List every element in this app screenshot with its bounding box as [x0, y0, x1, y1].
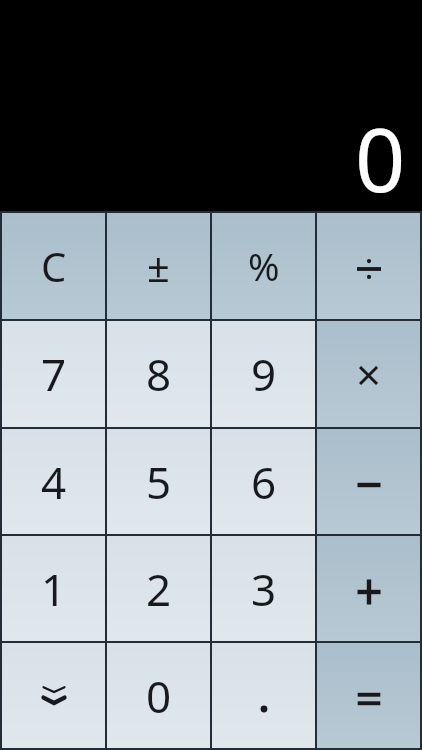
button[interactable]: C	[2, 213, 105, 319]
staticText: 8	[146, 344, 172, 404]
staticText: 9	[251, 344, 277, 404]
staticText: 0	[355, 98, 406, 218]
button[interactable]: 9	[212, 321, 315, 427]
staticText: 4	[41, 452, 67, 512]
button[interactable]: 5	[107, 429, 210, 534]
button[interactable]: 4	[2, 429, 105, 534]
button[interactable]: 0	[107, 643, 210, 748]
button[interactable]: ×	[317, 321, 420, 427]
button[interactable]	[2, 643, 105, 748]
button[interactable]: ±	[107, 213, 210, 319]
staticText: 7	[41, 344, 67, 404]
button[interactable]: 8	[107, 321, 210, 427]
button[interactable]	[317, 213, 420, 319]
staticText: ±	[147, 239, 170, 293]
button[interactable]: 6	[212, 429, 315, 534]
staticText: C	[41, 239, 67, 293]
button[interactable]	[317, 429, 420, 534]
staticText: ×	[356, 344, 382, 404]
staticText: 6	[251, 452, 277, 512]
button[interactable]	[317, 536, 420, 641]
button[interactable]: 3	[212, 536, 315, 641]
button[interactable]: 7	[2, 321, 105, 427]
button[interactable]: %	[212, 213, 315, 319]
staticText: 2	[146, 559, 172, 619]
staticText: 0	[146, 666, 172, 726]
button[interactable]: 1	[2, 536, 105, 641]
staticText: 5	[146, 452, 172, 512]
button[interactable]	[317, 643, 420, 748]
button[interactable]: 2	[107, 536, 210, 641]
staticText: 3	[251, 559, 277, 619]
button[interactable]	[212, 643, 315, 748]
staticText: %	[248, 240, 280, 292]
staticText: 1	[41, 559, 67, 619]
